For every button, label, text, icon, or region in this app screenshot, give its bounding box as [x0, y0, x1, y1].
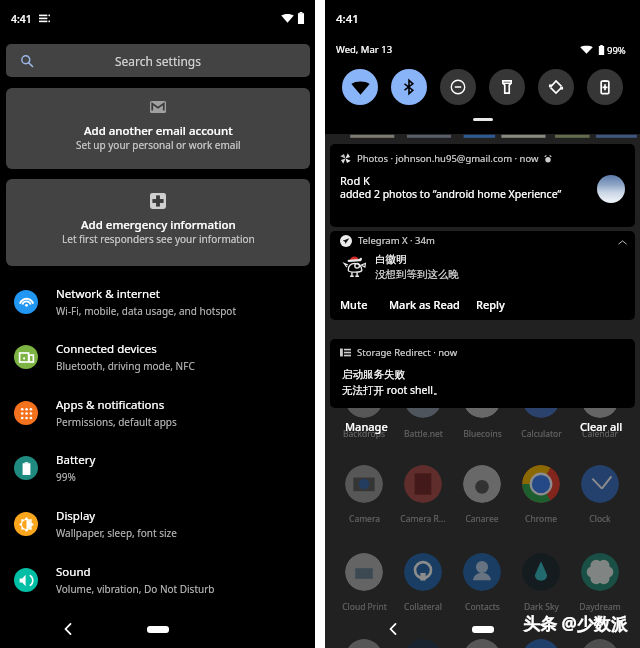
- staticText: Add emergency information: [81, 217, 236, 233]
- button[interactable]: Cloud Print: [339, 553, 389, 613]
- staticText: Wed, Mar 13: [336, 43, 393, 56]
- button[interactable]: Calendar: [575, 380, 625, 440]
- button[interactable]: Reply: [476, 297, 505, 312]
- staticText: Mute: [340, 297, 368, 312]
- button[interactable]: Battle.net: [398, 380, 448, 440]
- button[interactable]: Canaree: [457, 465, 507, 525]
- staticText: 白徽明: [375, 253, 407, 266]
- button[interactable]: Chrome: [516, 465, 566, 525]
- button[interactable]: Bluecoins: [457, 380, 507, 440]
- button[interactable]: Collapse: [615, 235, 629, 249]
- staticText: Camera: [349, 513, 380, 525]
- button[interactable]: Battery saver: [587, 69, 623, 105]
- staticText: Display: [56, 508, 96, 524]
- staticText: 4:41: [336, 11, 359, 27]
- button[interactable]: Apps & notifications: [0, 385, 315, 440]
- button[interactable]: Mark as Read: [389, 297, 460, 312]
- staticText: Search settings: [115, 53, 201, 69]
- staticText: Add another email account: [84, 123, 233, 139]
- staticText: Connected devices: [56, 341, 157, 357]
- staticText: Daydream: [579, 601, 621, 613]
- button[interactable]: Wi-Fi: [342, 69, 378, 105]
- staticText: 无法打开 root shell。: [342, 383, 444, 397]
- staticText: Mark as Read: [389, 297, 460, 312]
- staticText: 99%: [607, 44, 626, 57]
- button[interactable]: Daydream: [575, 553, 625, 613]
- staticText: Bluetooth, driving mode, NFC: [56, 359, 195, 373]
- staticText: 99%: [56, 470, 76, 484]
- staticText: Canaree: [465, 513, 499, 525]
- button[interactable]: Add another email account: [6, 88, 310, 169]
- staticText: Reply: [476, 297, 505, 312]
- button[interactable]: Mute: [340, 297, 368, 312]
- staticText: Apps & notifications: [56, 397, 165, 413]
- staticText: Manage: [345, 419, 388, 434]
- staticText: Calculator: [521, 428, 562, 440]
- staticText: Dark Sky: [524, 601, 559, 613]
- staticText: Network & internet: [56, 286, 160, 302]
- staticText: Clear all: [580, 419, 623, 434]
- staticText: Wi-Fi, mobile, data usage, and hotspot: [56, 304, 236, 318]
- button[interactable]: Bluetooth: [391, 69, 427, 105]
- button[interactable]: Calculator: [516, 380, 566, 440]
- button[interactable]: Storage Redirect · now: [330, 339, 635, 408]
- staticText: 没想到等到这么晚: [375, 268, 459, 281]
- staticText: 启动服务失败: [342, 368, 405, 381]
- staticText: Contacts: [465, 601, 500, 613]
- staticText: Volume, vibration, Do Not Disturb: [56, 582, 215, 596]
- button[interactable]: Collateral: [398, 553, 448, 613]
- button[interactable]: Back: [386, 622, 400, 636]
- button[interactable]: Camera R...: [398, 465, 448, 525]
- staticText: Permissions, default apps: [56, 415, 177, 429]
- staticText: Set up your personal or work email: [76, 138, 241, 152]
- staticText: Camera R...: [400, 513, 446, 525]
- button[interactable]: Clear all: [580, 419, 623, 434]
- button[interactable]: Add emergency information: [6, 179, 310, 266]
- button[interactable]: Connected devices: [0, 329, 315, 384]
- button[interactable]: Contacts: [457, 553, 507, 613]
- staticText: Sound: [56, 564, 91, 580]
- button[interactable]: Backdrops: [339, 380, 389, 440]
- staticText: Battery: [56, 452, 96, 468]
- button[interactable]: Home: [147, 626, 169, 633]
- staticText: Storage Redirect · now: [357, 346, 458, 359]
- staticText: 头条 @少数派: [523, 612, 628, 635]
- staticText: Chrome: [525, 513, 557, 525]
- button[interactable]: Clock: [575, 465, 625, 525]
- staticText: Rod K: [340, 173, 370, 188]
- staticText: Backdrops: [343, 428, 385, 440]
- staticText: Photos · johnson.hu95@gmail.com · now: [357, 152, 539, 165]
- button[interactable]: Do not disturb: [440, 69, 476, 105]
- staticText: Collateral: [404, 601, 442, 613]
- staticText: added 2 photos to “android home Xperienc…: [340, 187, 562, 201]
- button[interactable]: Search settings: [6, 44, 310, 77]
- staticText: Bluecoins: [463, 428, 502, 440]
- staticText: Battle.net: [404, 428, 443, 440]
- button[interactable]: Network & internet: [0, 274, 315, 329]
- button[interactable]: Display: [0, 496, 315, 551]
- button[interactable]: Camera: [339, 465, 389, 525]
- staticText: 4:41: [11, 12, 32, 26]
- button[interactable]: Auto rotate: [538, 69, 574, 105]
- button[interactable]: Back: [61, 622, 75, 636]
- button[interactable]: Manage: [345, 419, 388, 434]
- staticText: Cloud Print: [342, 601, 387, 613]
- button[interactable]: Dark Sky: [516, 553, 566, 613]
- button[interactable]: Photos · johnson.hu95@gmail.com · now: [330, 144, 635, 227]
- staticText: Clock: [589, 513, 611, 525]
- button[interactable]: Flashlight: [489, 69, 525, 105]
- staticText: Calendar: [582, 428, 618, 440]
- staticText: Wallpaper, sleep, font size: [56, 526, 177, 540]
- button[interactable]: Sound: [0, 552, 315, 607]
- staticText: Let first responders see your informatio…: [62, 232, 255, 246]
- button[interactable]: Home: [472, 626, 494, 633]
- staticText: Telegram X · 34m: [358, 234, 435, 247]
- button[interactable]: Battery: [0, 440, 315, 495]
